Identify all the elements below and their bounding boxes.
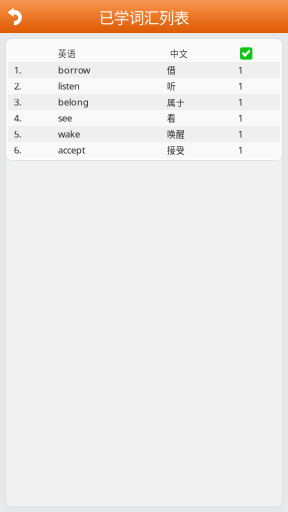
button[interactable]: 5. [8, 126, 280, 142]
staticText: 唤醒 [167, 128, 185, 140]
staticText: listen [58, 80, 80, 92]
staticText: accept [58, 144, 85, 156]
button[interactable]: 2. [8, 78, 280, 94]
staticText: 1 [238, 112, 243, 124]
staticText: wake [58, 128, 80, 140]
staticText: borrow [58, 64, 90, 76]
staticText: 1. [14, 64, 22, 76]
staticText: 5. [14, 128, 22, 140]
button[interactable]: 1. [8, 62, 280, 78]
staticText: 4. [14, 112, 22, 124]
staticText: see [58, 112, 72, 124]
staticText: 看 [167, 112, 176, 124]
button[interactable]: 6. [8, 142, 280, 158]
staticText: 2. [14, 80, 22, 92]
staticText: 1 [238, 64, 243, 76]
staticText: 1 [238, 80, 243, 92]
staticText: 听 [167, 80, 176, 92]
staticText: 英语 [58, 47, 76, 60]
staticText: 接受 [167, 144, 185, 156]
staticText: 1 [238, 128, 243, 140]
staticText: 6. [14, 144, 22, 156]
staticText: 1 [238, 96, 243, 108]
staticText: 中文 [170, 47, 188, 60]
staticText: belong [58, 96, 89, 108]
button[interactable]: Back [0, 0, 30, 33]
staticText: 1 [238, 144, 243, 156]
staticText: 3. [14, 96, 22, 108]
staticText: 属于 [167, 96, 185, 108]
staticText: 借 [167, 64, 176, 76]
button[interactable]: 4. [8, 110, 280, 126]
staticText: 已学词汇列表 [99, 5, 189, 28]
button[interactable]: 3. [8, 94, 280, 110]
button[interactable]: Select all [8, 47, 280, 60]
